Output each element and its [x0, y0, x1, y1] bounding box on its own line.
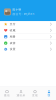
- button[interactable]: 陈小明: [0, 8, 56, 16]
- staticText: 设置: [10, 48, 16, 51]
- staticText: 陈小明: [13, 8, 22, 11]
- button[interactable]: 收藏: [0, 27, 56, 33]
- staticText: 表情: [10, 41, 16, 45]
- button[interactable]: 表情: [0, 40, 56, 46]
- staticText: 微信: [4, 94, 10, 97]
- button[interactable]: 通讯录: [14, 87, 28, 100]
- staticText: 相册: [10, 35, 16, 38]
- button[interactable]: 微信: [0, 87, 14, 100]
- staticText: 支付: [10, 23, 16, 26]
- staticText: 我: [47, 94, 50, 97]
- button[interactable]: 我: [42, 87, 56, 100]
- staticText: 收藏: [10, 29, 16, 32]
- staticText: 通讯录: [16, 94, 25, 97]
- button[interactable]: 相册: [0, 34, 56, 40]
- staticText: 微信号: xm_chen: [13, 12, 35, 16]
- button[interactable]: 支付: [0, 21, 56, 27]
- button[interactable]: 设置: [0, 46, 56, 52]
- button[interactable]: 发现: [28, 87, 42, 100]
- staticText: 发现: [32, 94, 38, 97]
